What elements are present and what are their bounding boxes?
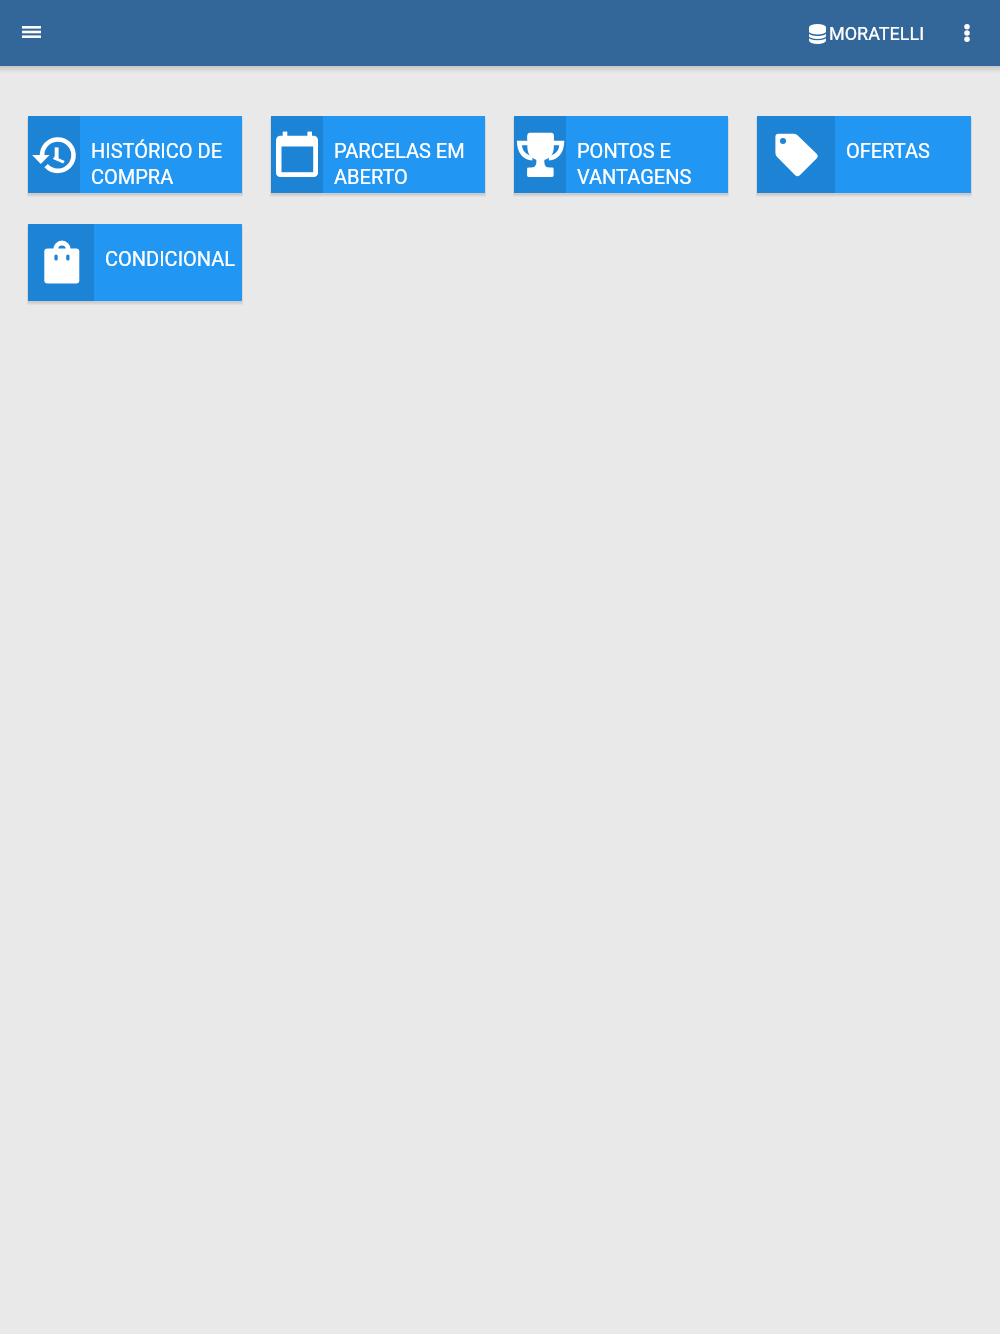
button[interactable]: OFERTAS [757,116,971,193]
staticText: HISTÓRICO DE COMPRA [91,139,222,189]
staticText: OFERTAS [846,139,930,162]
staticText: PARCELAS EM ABERTO [334,139,465,189]
button[interactable]: More options [945,11,989,55]
button[interactable]: Open navigation menu [9,11,53,55]
staticText: PONTOS E VANTAGENS [577,139,692,189]
button[interactable]: HISTÓRICO DE COMPRA [28,116,242,193]
button[interactable]: PARCELAS EM ABERTO [271,116,485,193]
button[interactable]: CONDICIONAL [28,224,242,301]
staticText: CONDICIONAL [105,247,236,270]
button[interactable]: PONTOS E VANTAGENS [514,116,728,193]
staticText: MORATELLI [829,23,925,44]
